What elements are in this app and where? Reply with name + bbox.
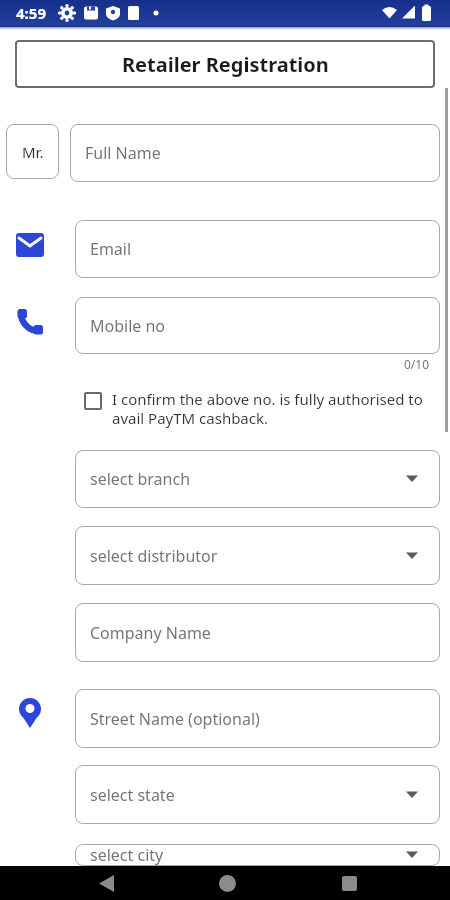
staticText: select branch (90, 468, 191, 490)
staticText: 0/10 (404, 356, 430, 372)
button[interactable] (332, 866, 366, 900)
staticText: I confirm the above no. is fully authori… (112, 389, 423, 428)
staticText: Street Name (optional) (90, 708, 260, 730)
staticText: select city (90, 844, 164, 866)
staticText: Mr. (22, 142, 44, 162)
button[interactable]: select state (75, 765, 440, 824)
button[interactable]: select city (75, 844, 440, 866)
button[interactable] (210, 866, 244, 900)
button[interactable]: Mobile no (75, 297, 440, 354)
staticText: select state (90, 784, 175, 806)
staticText: Email (90, 238, 132, 260)
button[interactable]: Company Name (75, 603, 440, 662)
button[interactable]: I confirm the above no. is fully authori… (84, 389, 423, 428)
button[interactable]: select distributor (75, 526, 440, 585)
staticText: Retailer Registration (122, 51, 329, 78)
button[interactable] (89, 866, 123, 900)
staticText: Full Name (85, 142, 161, 164)
staticText: select distributor (90, 545, 218, 567)
button[interactable]: select branch (75, 450, 440, 508)
button[interactable]: Street Name (optional) (75, 689, 440, 748)
button[interactable]: Mr. (6, 124, 59, 179)
staticText: 4:59 (16, 3, 46, 23)
staticText: Mobile no (90, 315, 166, 337)
button[interactable]: Full Name (70, 124, 440, 182)
button[interactable]: Email (75, 220, 440, 278)
staticText: Company Name (90, 622, 211, 644)
